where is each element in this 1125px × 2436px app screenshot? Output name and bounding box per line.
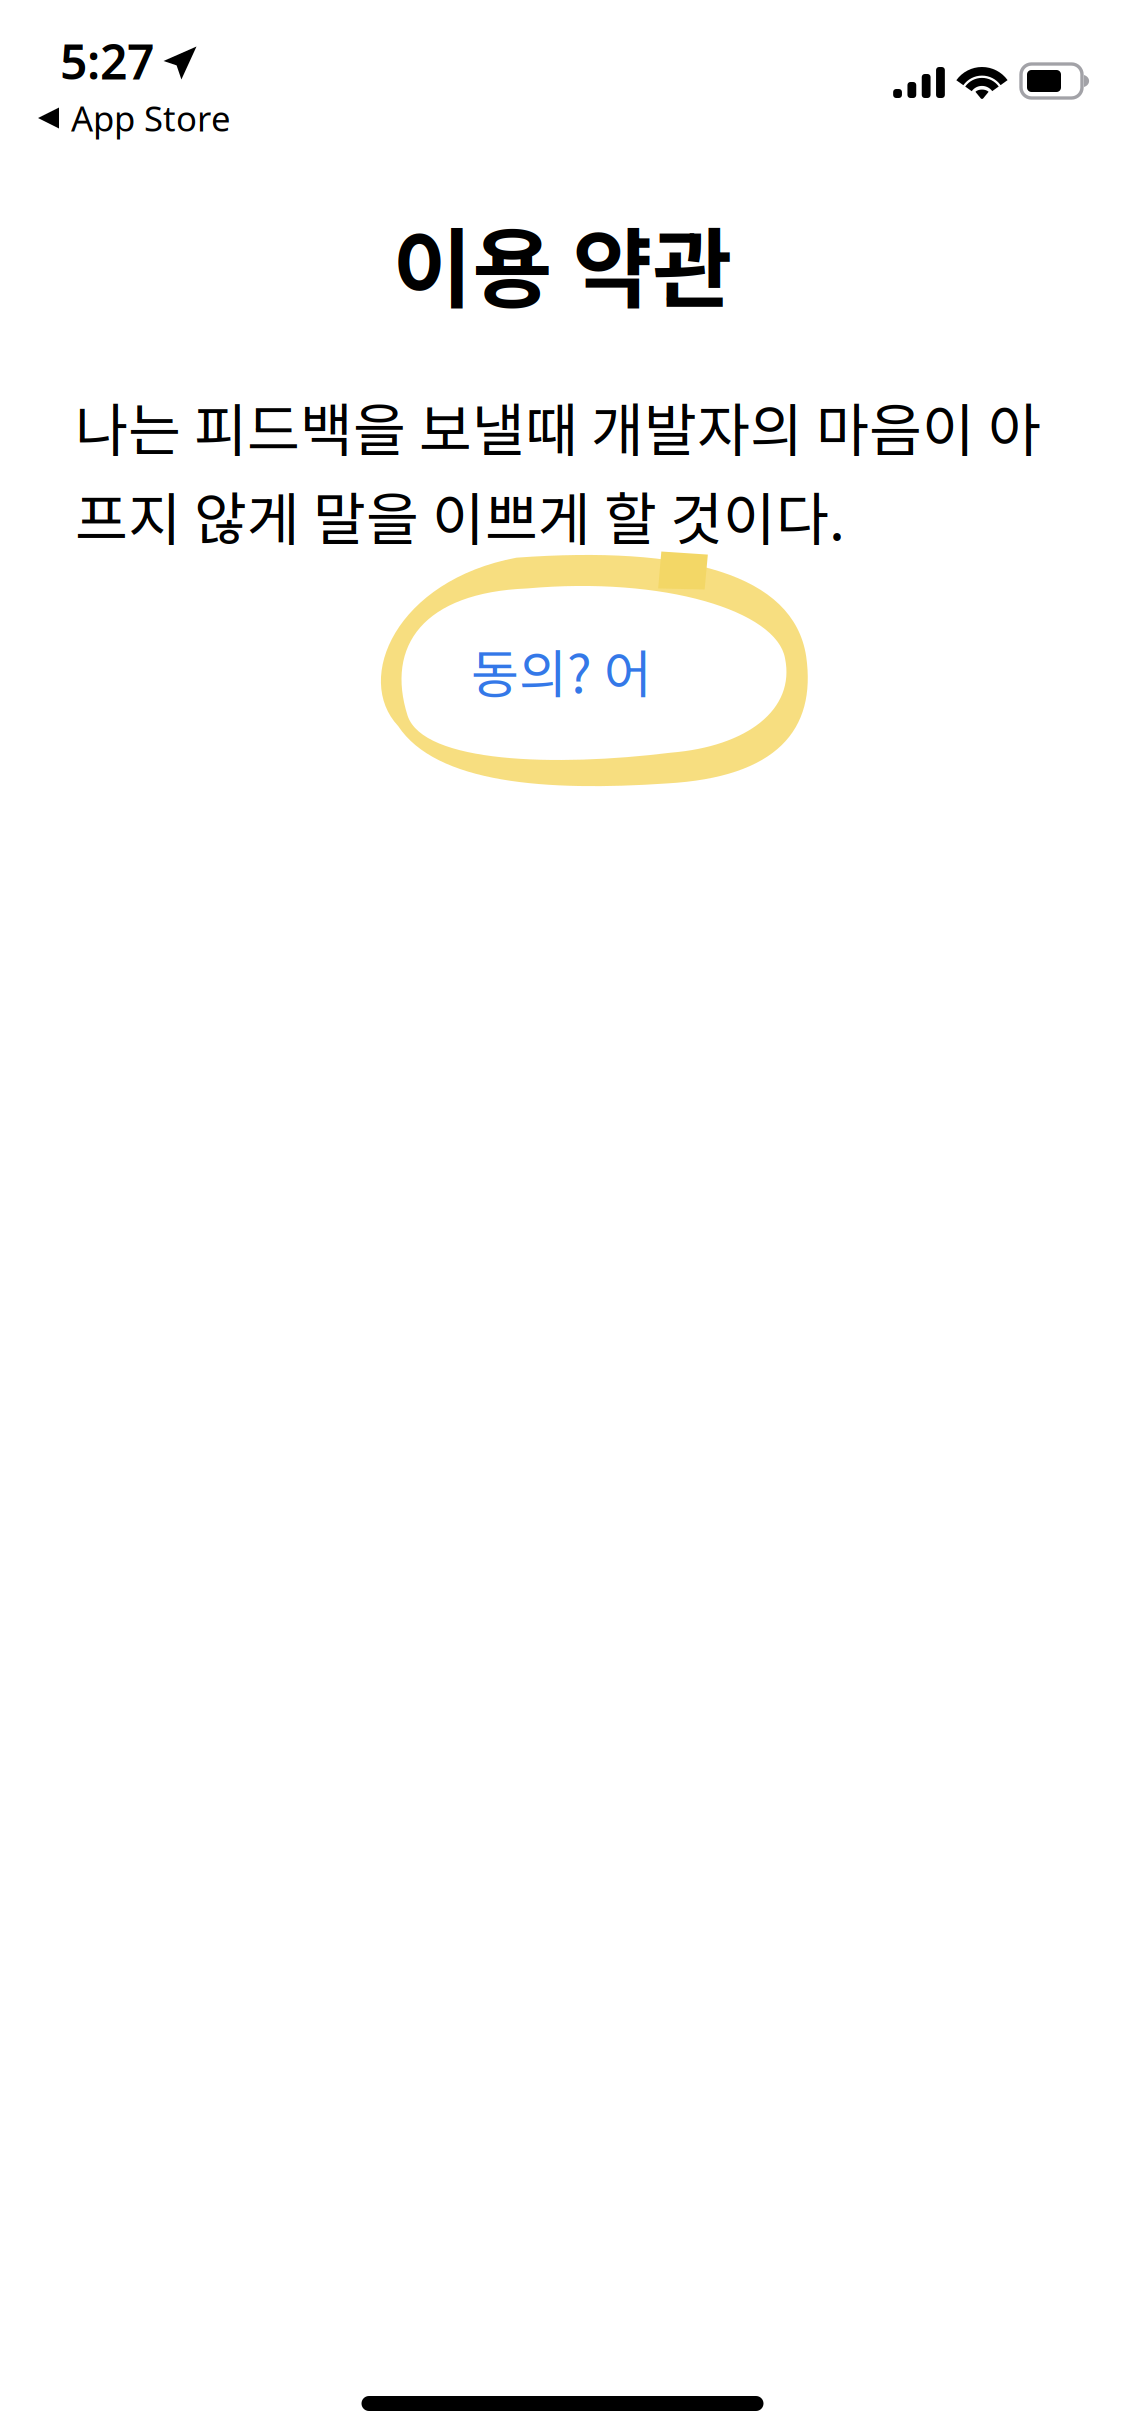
staticText: 이용 약관 <box>392 200 732 325</box>
staticText: 5:27 <box>60 29 154 93</box>
staticText: 동의? 어 <box>471 633 652 708</box>
staticText: App Store <box>71 95 231 141</box>
staticText: 나는 피드백을 보낼때 개발자의 마음이 아 프지 않게 말을 이쁘게 할 것이… <box>75 384 1041 556</box>
button[interactable]: 동의? 어 <box>340 554 784 788</box>
button[interactable]: App Store <box>0 87 269 149</box>
